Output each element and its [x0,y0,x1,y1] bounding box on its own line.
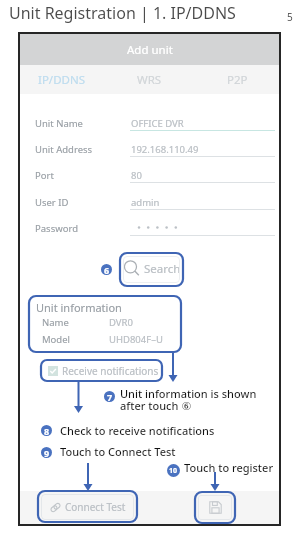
staticText: Password [35,222,78,235]
staticText: OFFICE DVR [131,117,184,130]
staticText: Search [144,261,180,277]
staticText: Port [35,169,54,182]
button[interactable]: Step 10 [167,464,180,477]
staticText: Name [42,316,69,329]
staticText: Model [42,333,71,346]
button[interactable]: Step 7 [104,391,115,402]
button[interactable]: Step 9 [41,447,52,458]
button[interactable]: IP/DDNS [18,65,105,94]
staticText: Receive notifications [62,364,159,378]
button[interactable]: Receive notifications [48,364,159,378]
staticText: 7 [107,391,113,402]
staticText: 9 [44,447,50,458]
staticText: admin [131,196,160,209]
staticText: Unit information is shown after touch ⑥ [120,386,257,413]
staticText: DVR0 [109,316,133,329]
button[interactable]: Register unit [198,495,232,520]
button[interactable]: WRS [105,65,193,94]
staticText: IP/DDNS [38,72,85,88]
staticText: WRS [137,72,162,88]
staticText: Check to receive notifications [60,423,215,438]
staticText: 80 [131,169,142,182]
staticText: Touch to Connect Test [60,444,176,459]
button[interactable]: Connect Test [41,494,134,520]
staticText: Unit Name [35,117,83,130]
staticText: 5 [287,10,293,24]
button[interactable]: P2P [193,65,281,94]
staticText: Unit information [36,300,122,315]
staticText: 192.168.110.49 [131,143,199,156]
staticText: Touch to register [184,460,274,475]
staticText: 10 [169,466,178,476]
staticText: P2P [227,72,248,88]
staticText: Add unit [127,42,173,58]
button[interactable]: Step 8 [41,425,52,436]
staticText: 6 [104,264,110,275]
button[interactable]: Search [123,256,180,283]
staticText: Connect Test [65,500,126,514]
staticText: UHD804F–U [109,333,163,346]
staticText: 8 [44,425,50,436]
staticText: Unit Registration | 1. IP/DDNS [9,2,236,24]
staticText: Unit Address [35,143,93,156]
staticText: User ID [35,196,69,209]
button[interactable]: Step 6 [101,264,112,275]
